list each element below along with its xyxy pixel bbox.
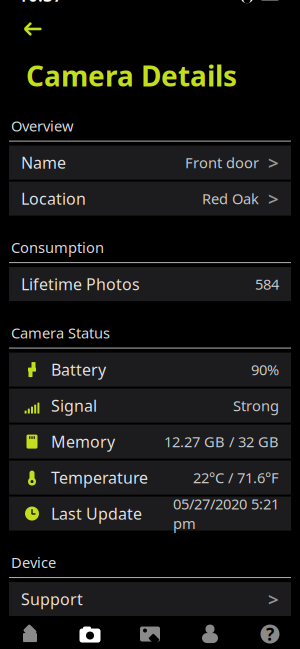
staticText: > [268, 150, 279, 175]
staticText: Battery [51, 359, 106, 380]
staticText: Support [21, 588, 83, 610]
staticText: 05/27/2020 5:21 pm [173, 494, 279, 533]
staticText: 90% [251, 360, 279, 379]
staticText: Lifetime Photos [21, 273, 140, 295]
staticText: Front door [185, 153, 259, 172]
staticText: 584 [255, 274, 279, 294]
staticText: Temperature [51, 467, 148, 488]
button[interactable]: Back [14, 13, 52, 45]
button[interactable]: Support [9, 582, 291, 616]
staticText: Camera Details [26, 57, 237, 94]
button[interactable]: Location [9, 182, 291, 216]
staticText: 12.27 GB / 32 GB [164, 432, 279, 451]
staticText: Last Update [51, 503, 142, 524]
button[interactable]: Profile [180, 616, 240, 649]
staticText: 22°C / 71.6°F [193, 468, 279, 487]
button[interactable]: Lifetime Photos [9, 267, 291, 301]
staticText: Red Oak [202, 189, 259, 208]
staticText: ? [266, 622, 274, 645]
button[interactable]: Name [9, 146, 291, 180]
staticText: Strong [233, 396, 279, 415]
staticText: Location [21, 188, 86, 209]
staticText: > [268, 186, 279, 211]
staticText: 10:37 [18, 0, 63, 6]
staticText: > [268, 587, 279, 611]
staticText: Consumption [11, 238, 104, 257]
staticText: Name [21, 152, 66, 173]
staticText: Camera Status [11, 323, 110, 343]
button[interactable]: Home [0, 616, 60, 649]
button[interactable]: Photos [120, 616, 180, 649]
staticText: Signal [51, 395, 97, 416]
staticText: Device [11, 553, 56, 572]
button[interactable]: Camera [60, 616, 120, 649]
button[interactable]: Help [240, 616, 300, 649]
staticText: Memory [51, 431, 115, 452]
staticText: Overview [11, 116, 74, 136]
